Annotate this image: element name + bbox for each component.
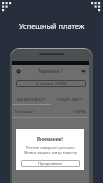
staticText: Успешный платеж [19,21,85,31]
button[interactable]: Cart [79,67,87,75]
button[interactable]: К оплате: 0 BYN [16,80,86,87]
button[interactable]: Позиция 1 [15,106,86,117]
staticText: ПРАЙС-ЛИСТ [57,97,83,102]
button[interactable]: Продолжить [21,160,80,167]
button[interactable]: КАЛЬКУЛЯТОР [12,94,50,105]
staticText: Позиция 1 [15,109,36,114]
staticText: Платеж совершен успешно. Можно выдать то… [24,145,77,155]
staticText: 0 BYN [74,109,86,114]
staticText: К оплате: 0 BYN [36,81,67,86]
staticText: КАЛЬКУЛЯТОР [17,97,45,102]
staticText: Продолжить [38,161,63,166]
button[interactable]: Settings [14,67,22,75]
staticText: Внимание! [37,136,63,142]
staticText: Терминал 1 [38,68,63,74]
button[interactable]: ПРАЙС-ЛИСТ [50,94,89,105]
